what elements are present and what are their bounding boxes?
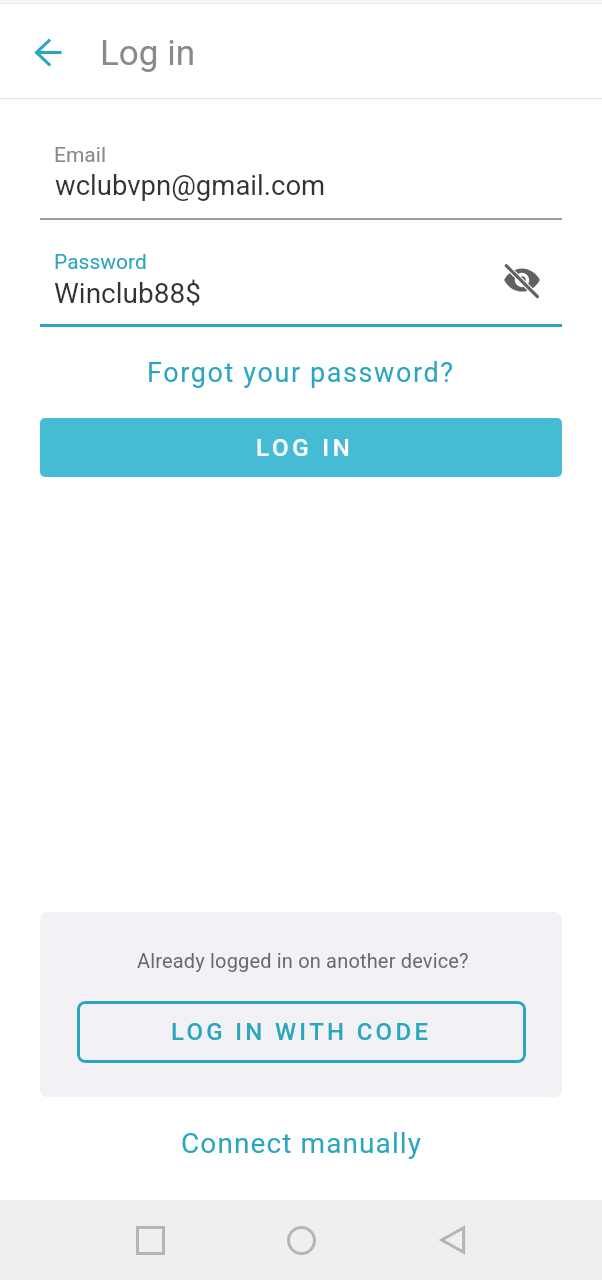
button[interactable]: LOG IN	[40, 418, 562, 477]
staticText: Winclub88$	[54, 277, 201, 310]
staticText: Email	[54, 143, 106, 168]
button[interactable]: LOG IN WITH CODE	[77, 1001, 526, 1063]
button[interactable]: Forgot your password?	[0, 351, 602, 395]
staticText: Forgot your password?	[147, 357, 455, 389]
button[interactable]: Recent apps	[110, 1200, 190, 1280]
button[interactable]: Back	[16, 20, 80, 84]
button[interactable]: Show password	[487, 249, 557, 311]
button[interactable]: Connect manually	[1, 1120, 602, 1166]
staticText: LOG IN	[256, 434, 354, 462]
button[interactable]: Back	[412, 1200, 492, 1280]
button[interactable]: Home	[261, 1200, 341, 1280]
staticText: Already logged in on another device?	[137, 949, 469, 972]
staticText: wclubvpn@gmail.com	[55, 169, 326, 201]
staticText: Log in	[100, 33, 195, 74]
staticText: Password	[54, 250, 147, 275]
staticText: Connect manually	[181, 1127, 423, 1160]
staticText: LOG IN WITH CODE	[171, 1018, 432, 1046]
